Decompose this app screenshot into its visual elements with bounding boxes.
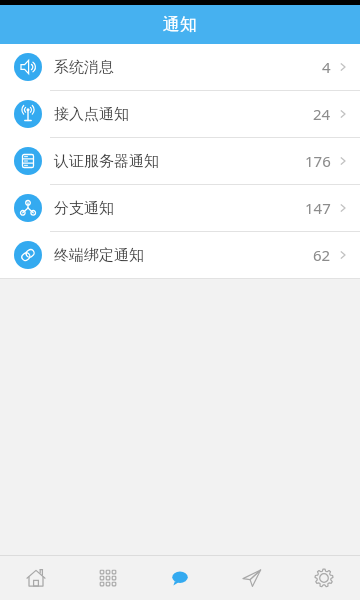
staticText: 通知: [163, 14, 197, 35]
staticText: 终端绑定通知: [54, 246, 144, 265]
button[interactable]: 终端绑定通知: [0, 232, 360, 278]
staticText: 147: [305, 198, 331, 218]
staticText: 分支通知: [54, 199, 114, 218]
button[interactable]: 接入点通知: [0, 91, 360, 137]
button[interactable]: 分支通知: [0, 185, 360, 231]
button[interactable]: 认证服务器通知: [0, 138, 360, 184]
staticText: 接入点通知: [54, 105, 129, 124]
staticText: 4: [322, 57, 331, 77]
staticText: 系统消息: [54, 58, 114, 77]
button[interactable]: Messages: [144, 556, 216, 600]
staticText: 认证服务器通知: [54, 152, 159, 171]
staticText: 24: [313, 104, 331, 124]
button[interactable]: 系统消息: [0, 44, 360, 90]
button[interactable]: Settings: [288, 556, 360, 600]
staticText: 176: [305, 151, 331, 171]
button[interactable]: Home: [0, 556, 72, 600]
button[interactable]: Apps: [72, 556, 144, 600]
button[interactable]: Send: [216, 556, 288, 600]
staticText: 62: [313, 245, 331, 265]
